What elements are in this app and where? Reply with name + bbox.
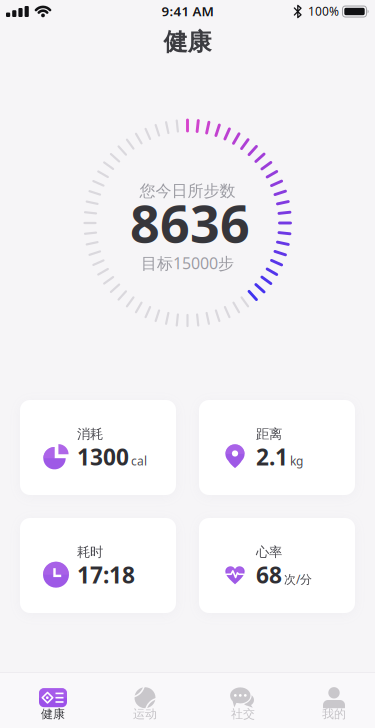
- staticText: 消耗: [77, 426, 103, 442]
- button[interactable]: 健康: [18, 687, 88, 724]
- button[interactable]: 距离: [199, 400, 355, 495]
- staticText: 耗时: [77, 544, 103, 560]
- staticText: 我的: [322, 707, 346, 721]
- staticText: 目标15000步: [141, 252, 234, 274]
- staticText: 社交: [231, 707, 255, 721]
- staticText: 健康: [41, 707, 65, 721]
- button[interactable]: 耗时: [20, 518, 176, 613]
- button[interactable]: 运动: [110, 687, 180, 724]
- staticText: 您今日所步数: [139, 181, 235, 201]
- staticText: 距离: [256, 426, 282, 442]
- staticText: cal: [131, 453, 147, 469]
- staticText: 1300: [77, 442, 129, 472]
- staticText: 次/分: [284, 571, 312, 587]
- button[interactable]: 消耗: [20, 400, 176, 495]
- staticText: 2.1: [256, 442, 288, 472]
- button[interactable]: 我的: [299, 687, 369, 724]
- staticText: 8636: [130, 188, 250, 257]
- staticText: 68: [256, 560, 282, 590]
- button[interactable]: 心率: [199, 518, 355, 613]
- staticText: 100%: [308, 3, 339, 19]
- staticText: kg: [290, 453, 303, 469]
- staticText: 17:18: [77, 560, 135, 590]
- staticText: 健康: [163, 27, 211, 57]
- button[interactable]: 社交: [208, 687, 278, 724]
- staticText: 9:41 AM: [161, 2, 213, 20]
- staticText: 运动: [133, 707, 157, 721]
- staticText: 心率: [256, 544, 282, 560]
